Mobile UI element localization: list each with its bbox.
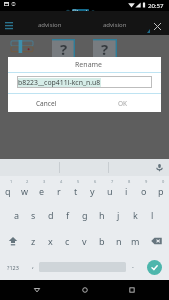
staticText: 7	[111, 179, 114, 184]
staticText: b8223__cop411l-kcn_n.u8	[18, 78, 101, 87]
staticText: Local	[77, 9, 88, 15]
button[interactable]: 5	[67, 176, 84, 202]
button[interactable]: ?	[93, 39, 117, 59]
button[interactable]: 4	[50, 176, 67, 202]
staticText: 20:57	[148, 2, 164, 10]
button[interactable]: Library	[11, 40, 33, 53]
staticText: f	[66, 209, 70, 221]
button[interactable]: Done	[147, 260, 162, 275]
button[interactable]: f	[59, 202, 76, 228]
staticText: p	[158, 185, 164, 197]
staticText: h	[99, 209, 105, 221]
button[interactable]: 8	[118, 176, 135, 202]
button[interactable]: ,	[26, 254, 39, 280]
staticText: d	[48, 209, 54, 221]
staticText: x	[48, 235, 53, 247]
button[interactable]: h	[93, 202, 110, 228]
button[interactable]: n	[110, 228, 127, 254]
button[interactable]: OK	[84, 94, 161, 112]
staticText: y	[90, 185, 95, 197]
staticText: q	[5, 185, 11, 197]
staticText: m	[131, 235, 140, 247]
button[interactable]: v	[76, 228, 93, 254]
staticText: k	[133, 209, 138, 221]
staticText: z	[31, 235, 36, 247]
staticText: g	[82, 209, 88, 221]
button[interactable]: j	[110, 202, 127, 228]
button[interactable]: 0	[152, 176, 169, 202]
button[interactable]: a	[8, 202, 25, 228]
staticText: l	[151, 209, 154, 221]
staticText: ,	[32, 261, 34, 271]
button[interactable]: Shift	[0, 228, 25, 254]
staticText: b	[99, 235, 105, 247]
staticText: 2	[26, 179, 29, 184]
staticText: 3	[43, 179, 46, 184]
button[interactable]: 6	[84, 176, 101, 202]
staticText: advision	[103, 21, 127, 29]
staticText: i	[125, 185, 128, 197]
staticText: Cancel	[36, 99, 57, 108]
staticText: ?123	[7, 264, 19, 271]
staticText: r	[57, 185, 61, 197]
button[interactable]: advision	[82, 11, 147, 35]
button[interactable]: b	[93, 228, 110, 254]
staticText: Rename	[75, 60, 103, 70]
staticText: e	[39, 185, 45, 197]
button[interactable]: 7	[101, 176, 118, 202]
button[interactable]: k	[127, 202, 144, 228]
button[interactable]: 1	[0, 176, 16, 202]
button[interactable]: m	[127, 228, 144, 254]
staticText: t	[74, 185, 78, 197]
button[interactable]	[109, 159, 169, 176]
button[interactable]: Recents	[122, 280, 142, 300]
button[interactable]: c	[59, 228, 76, 254]
staticText: v	[82, 235, 87, 247]
staticText: 5	[77, 179, 80, 184]
staticText: w	[21, 185, 29, 197]
button[interactable]: Back	[27, 280, 47, 300]
staticText: c	[65, 235, 70, 247]
staticText: u	[107, 185, 113, 197]
staticText: n	[116, 235, 122, 247]
button[interactable]: z	[25, 228, 42, 254]
staticText: 4	[60, 179, 63, 184]
button[interactable]: Home	[75, 280, 95, 300]
staticText: s	[31, 209, 36, 221]
staticText: advision	[38, 21, 62, 29]
staticText: 6	[94, 179, 97, 184]
staticText: 1	[10, 179, 13, 184]
staticText: OK	[118, 99, 128, 108]
button[interactable]: g	[76, 202, 93, 228]
staticText: 9	[145, 179, 148, 184]
button[interactable]: 9	[135, 176, 152, 202]
button[interactable]: s	[25, 202, 42, 228]
button[interactable]: ?123	[0, 254, 26, 280]
staticText: ?	[101, 39, 109, 59]
staticText: .	[132, 261, 134, 271]
button[interactable]: Voice input	[154, 162, 165, 173]
staticText: 8	[128, 179, 131, 184]
staticText: j	[117, 209, 120, 221]
button[interactable]: x	[42, 228, 59, 254]
button[interactable]: 2	[16, 176, 33, 202]
button[interactable]: Close	[147, 11, 169, 35]
button[interactable]: ?	[52, 39, 75, 59]
button[interactable]: d	[42, 202, 59, 228]
staticText: o	[141, 185, 147, 197]
button[interactable]: Backspace	[144, 228, 169, 254]
staticText: a	[14, 209, 20, 221]
button[interactable]: .	[126, 254, 139, 280]
button[interactable]: Cancel	[8, 94, 84, 112]
staticText: ?	[60, 39, 68, 59]
button[interactable]: l	[144, 202, 161, 228]
button[interactable]: advision	[18, 11, 82, 35]
button[interactable]: Menu	[0, 11, 18, 35]
button[interactable]: 3	[33, 176, 50, 202]
staticText: 0	[162, 179, 165, 184]
